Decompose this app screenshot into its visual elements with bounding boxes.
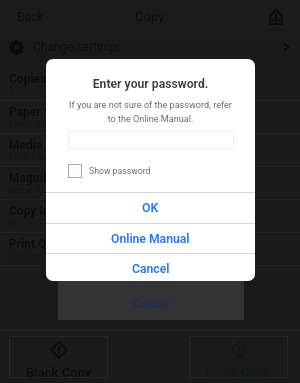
staticText: Letter 8.5"x11" (9, 119, 68, 130)
staticText: Color Copy (206, 365, 271, 378)
staticText: Same size (9, 185, 51, 196)
button[interactable]: Show password (68, 164, 151, 178)
staticText: Copy (135, 9, 165, 24)
staticText: Paper Size (9, 105, 67, 119)
staticText: Black Copy (26, 365, 92, 378)
button[interactable]: Print Quality (0, 233, 300, 266)
staticText: If you are not sure of the password, ref… (65, 100, 236, 124)
button[interactable]: Copy Intensity (0, 200, 300, 233)
staticText: Print Quality (9, 237, 76, 251)
staticText: Cancel (132, 297, 170, 311)
button[interactable]: Media Type (0, 134, 300, 167)
button[interactable]: OK (46, 193, 255, 223)
button[interactable]: Copies (0, 68, 300, 101)
button[interactable]: Cancel (46, 254, 255, 281)
staticText: Cancel (132, 262, 170, 276)
staticText: Show password (89, 166, 151, 176)
staticText: Back (17, 10, 44, 24)
staticText: Plain Paper (9, 152, 55, 163)
button[interactable]: Online Manual (46, 224, 255, 253)
staticText: Copy Intensity (9, 204, 87, 218)
staticText: Media Type (9, 138, 72, 152)
staticText: Copies (9, 72, 47, 86)
button[interactable]: Magnification (0, 167, 300, 200)
staticText: Change settings (33, 40, 120, 54)
button[interactable] (68, 131, 234, 149)
staticText: OK (142, 201, 159, 215)
button[interactable]: Change settings (0, 34, 300, 60)
button[interactable]: Cancel (58, 272, 244, 320)
button[interactable]: Paper Size (0, 101, 300, 134)
button[interactable]: Home (263, 4, 289, 30)
staticText: Online Manual (111, 232, 190, 246)
staticText: Magnification (9, 171, 84, 185)
button[interactable]: Black Copy (9, 336, 108, 378)
button[interactable]: Color Copy (189, 336, 288, 378)
staticText: Enter your password. (46, 77, 255, 91)
